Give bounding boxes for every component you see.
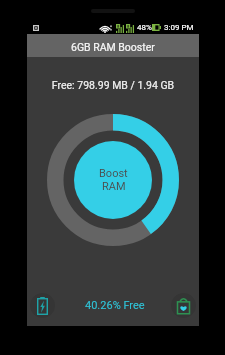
staticText: 40.26% Free	[85, 299, 145, 312]
button[interactable]: Battery saver	[30, 293, 55, 318]
staticText: Boost	[99, 167, 128, 180]
staticText: RAM	[102, 180, 126, 193]
staticText: Free: 798.99 MB / 1.94 GB	[27, 79, 199, 91]
button[interactable]: App lock	[171, 293, 196, 318]
staticText: 6GB RAM Booster	[71, 41, 155, 53]
staticText: 3:09 PM	[164, 23, 194, 32]
button[interactable]: 6GB RAM Booster	[27, 34, 199, 58]
staticText: 48%	[137, 23, 152, 32]
button[interactable]: Boost	[74, 141, 152, 219]
